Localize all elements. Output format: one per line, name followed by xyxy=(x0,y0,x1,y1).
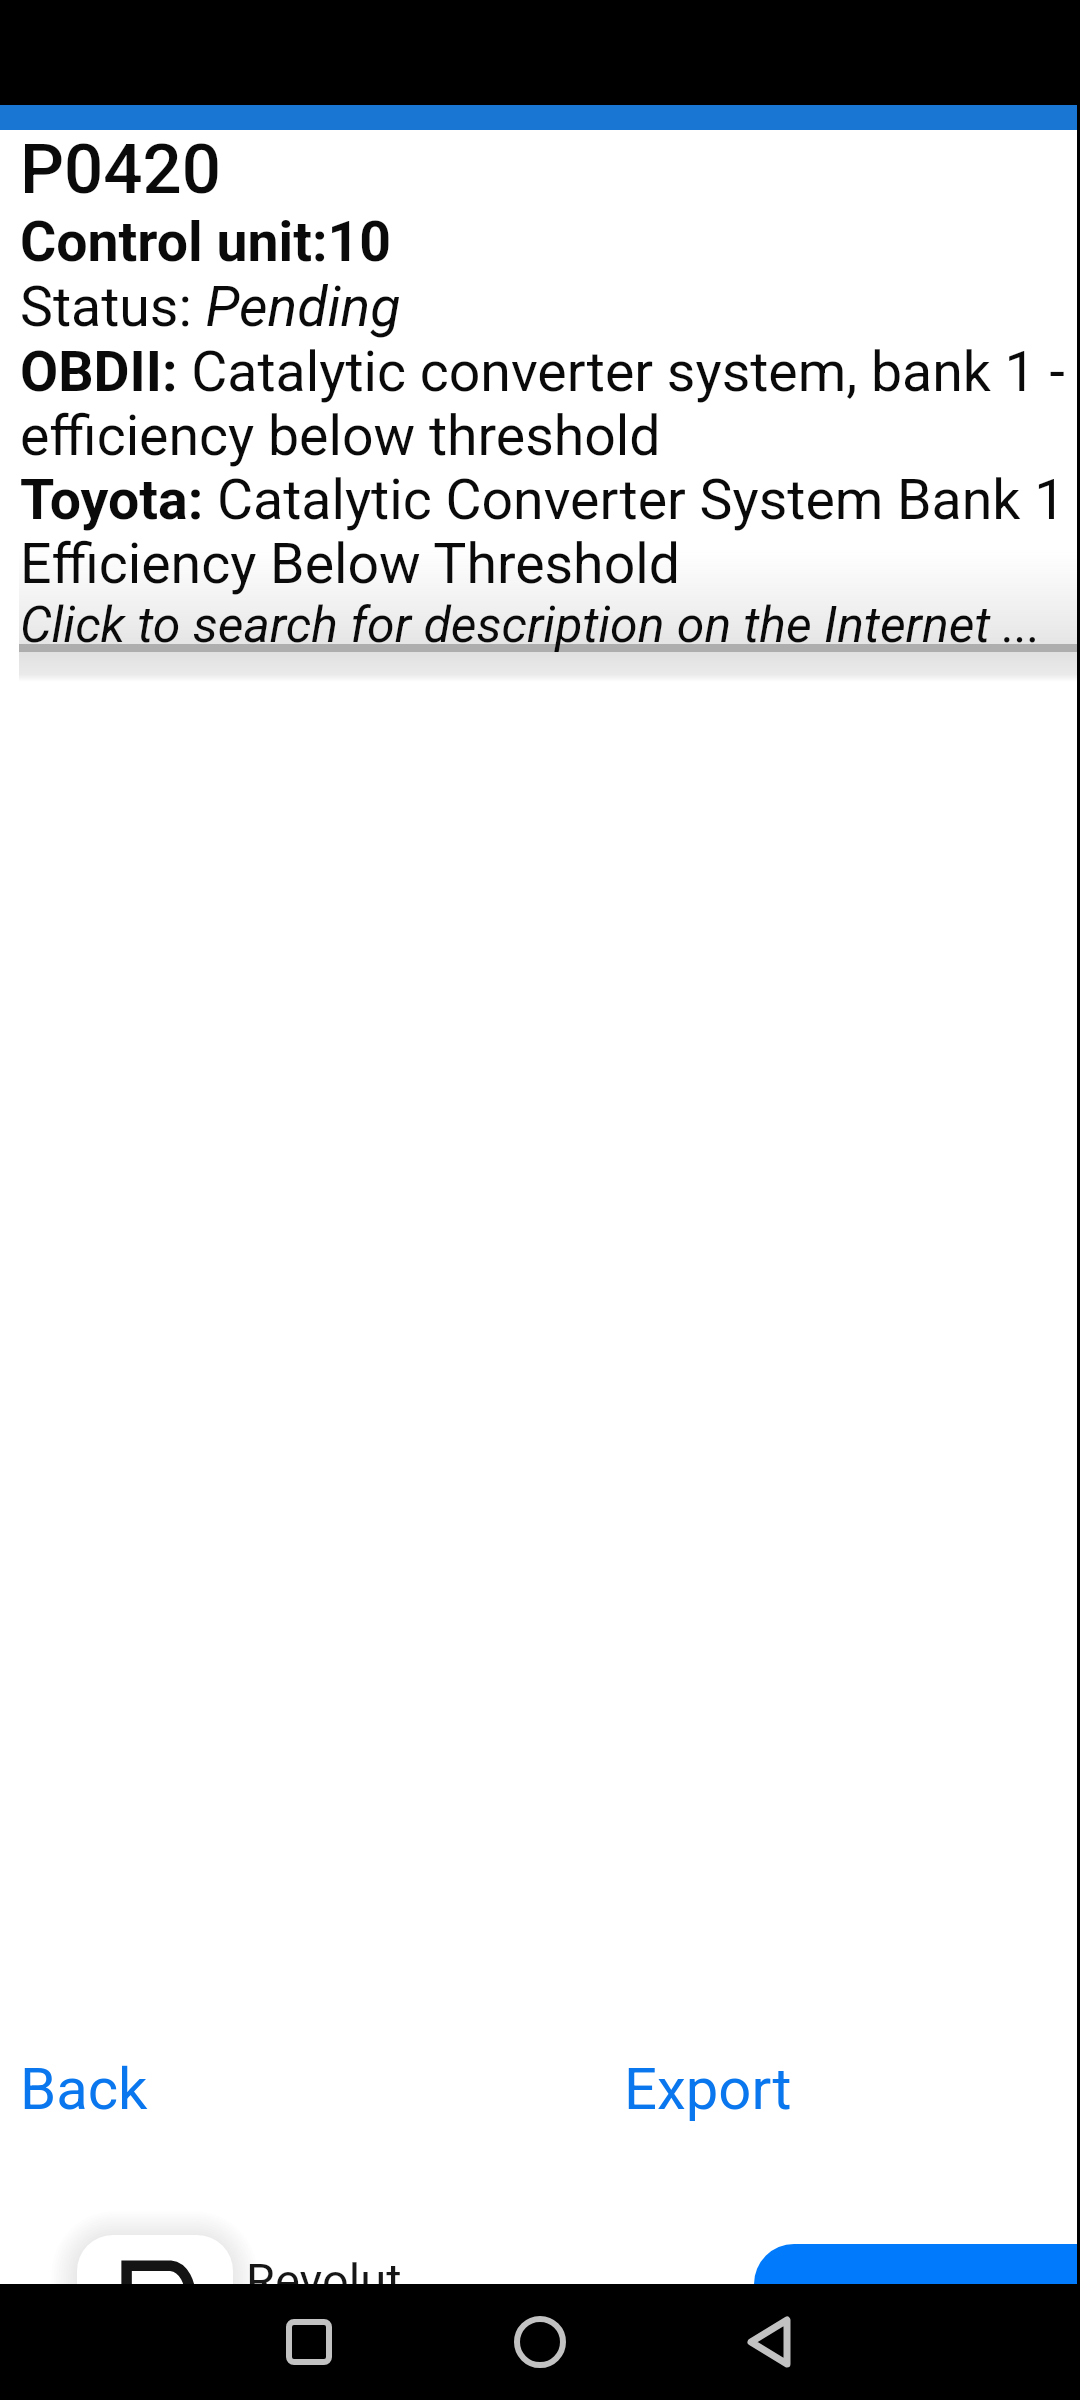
staticText: Revolut xyxy=(246,2253,402,2308)
button[interactable]: Back xyxy=(0,2024,540,2154)
staticText: Click to search for description on the I… xyxy=(20,596,1042,655)
staticText: Toyota: Catalytic Converter System Bank … xyxy=(20,468,1066,596)
staticText: P0420 xyxy=(20,129,221,210)
button[interactable]: Share with Revolut xyxy=(77,2235,233,2391)
button[interactable]: Export xyxy=(540,2024,1080,2154)
button[interactable]: Recent apps xyxy=(286,2319,332,2365)
staticText: Export xyxy=(624,2055,792,2123)
staticText: Status: Pending xyxy=(20,275,401,340)
button[interactable]: Home xyxy=(514,2316,566,2368)
button[interactable]: Send xyxy=(754,2244,1080,2284)
staticText: Back xyxy=(20,2055,148,2123)
button[interactable]: P0420 xyxy=(20,129,1078,655)
staticText: OBDII: Catalytic converter system, bank … xyxy=(20,340,1065,468)
staticText: Control unit:10 xyxy=(20,210,392,275)
button[interactable]: Back xyxy=(747,2316,791,2368)
